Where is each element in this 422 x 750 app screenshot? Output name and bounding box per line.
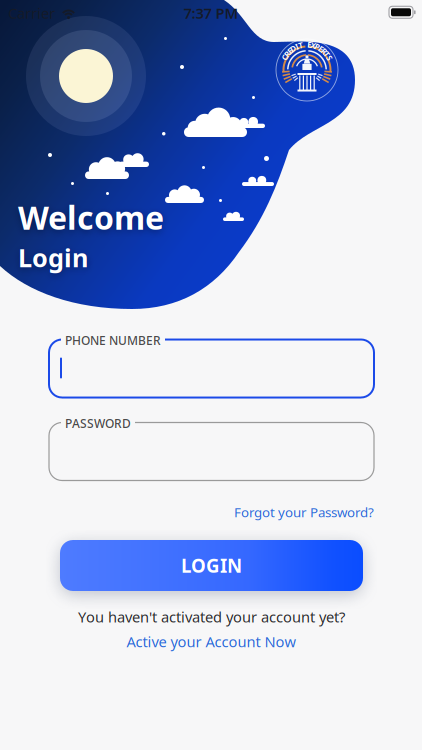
staticText: [306, 39, 308, 50]
staticText: R: [304, 39, 309, 50]
staticText: Forgot your Password?: [234, 503, 374, 521]
staticText: P: [304, 39, 309, 50]
staticText: X: [304, 39, 309, 50]
staticText: I: [305, 39, 308, 50]
staticText: E: [305, 39, 309, 50]
staticText: Login: [18, 240, 88, 274]
staticText: S: [305, 39, 309, 50]
staticText: PHONE NUMBER: [65, 332, 161, 348]
staticText: Active your Account Now: [126, 632, 296, 651]
staticText: T: [304, 39, 309, 50]
staticText: R: [304, 39, 309, 50]
button[interactable]: Forgot your Password?: [49, 477, 374, 524]
staticText: D: [304, 39, 310, 50]
staticText: T: [304, 39, 309, 50]
staticText: Carrier: [8, 3, 55, 23]
staticText: C: [304, 39, 309, 50]
staticText: PASSWORD: [65, 415, 131, 431]
staticText: E: [305, 39, 309, 50]
staticText: E: [305, 39, 309, 50]
staticText: 7:37 PM: [183, 3, 238, 23]
button[interactable]: Active your Account Now: [49, 626, 374, 652]
button[interactable]: LOGIN: [49, 540, 363, 591]
staticText: Welcome: [18, 196, 164, 238]
staticText: LOGIN: [181, 553, 242, 578]
staticText: You haven't activated your account yet?: [78, 607, 345, 626]
